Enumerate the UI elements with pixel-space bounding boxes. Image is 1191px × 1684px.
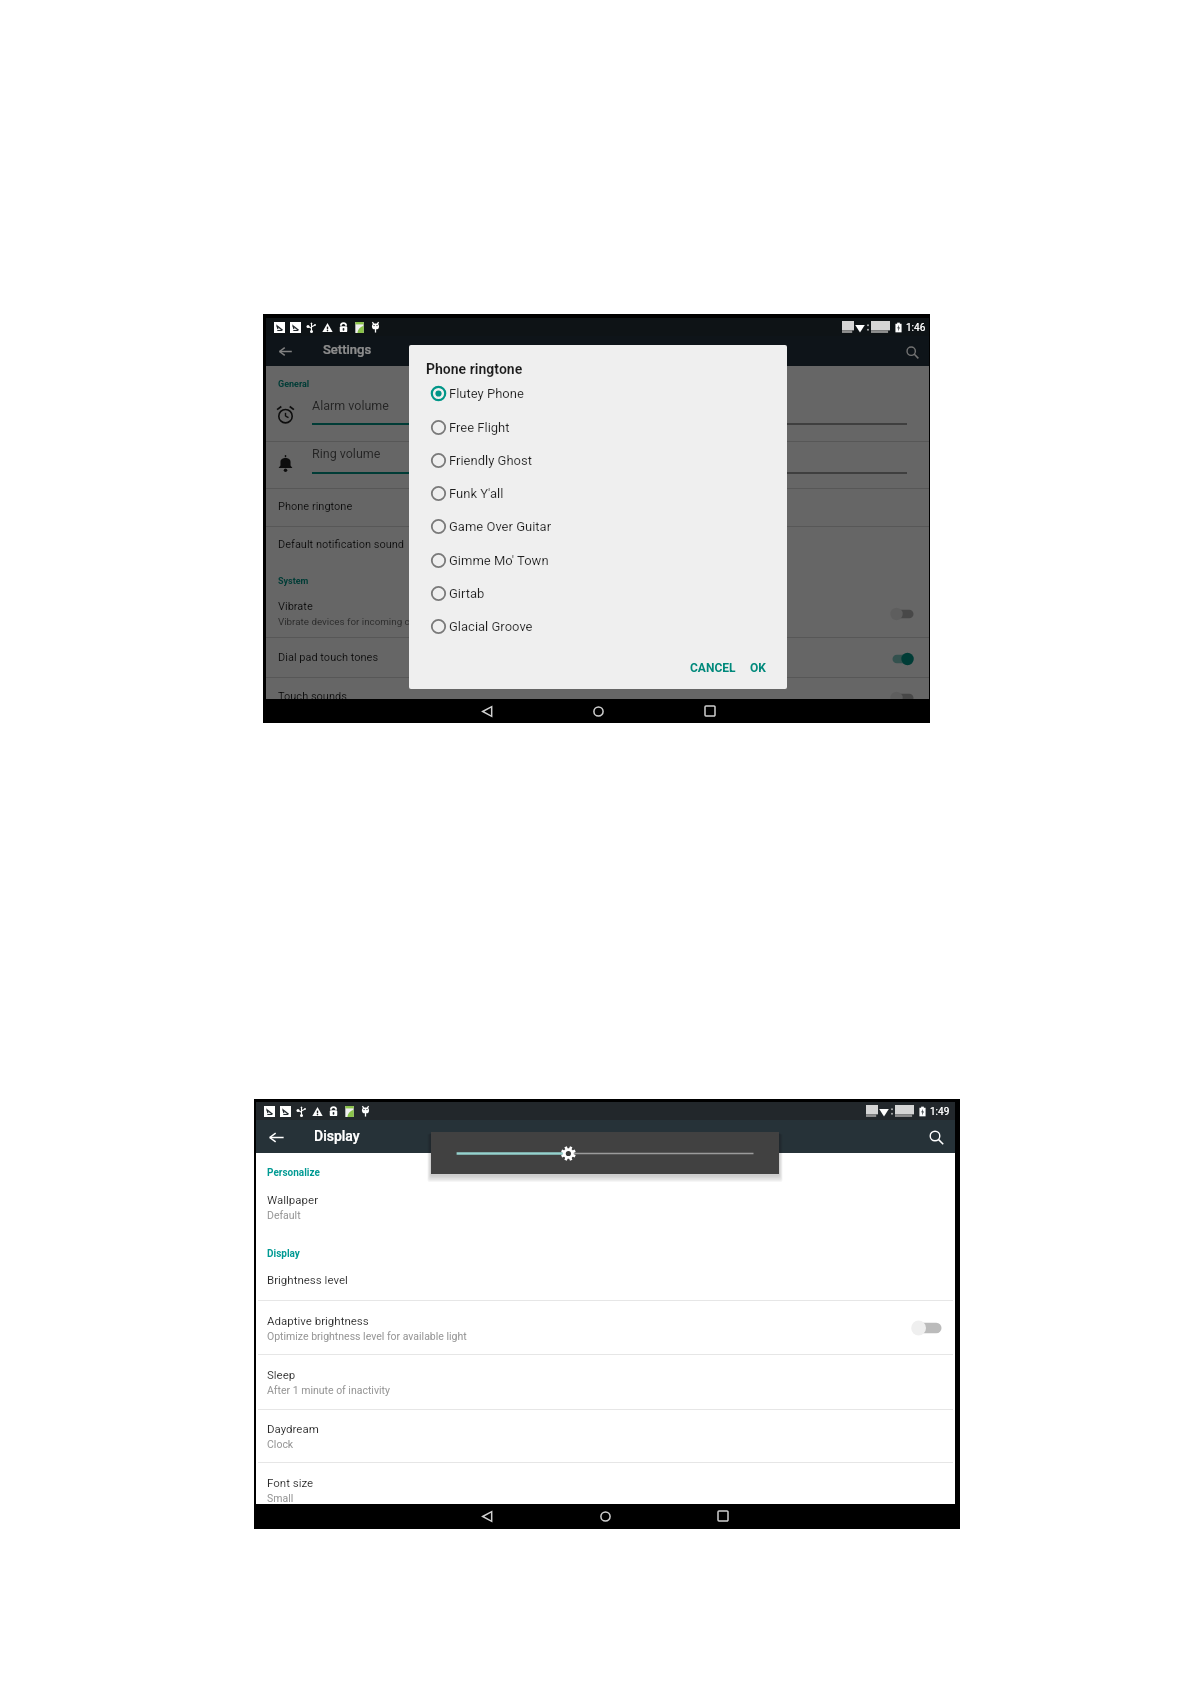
button[interactable]: Search: [898, 338, 926, 366]
button[interactable]: Back: [271, 337, 299, 365]
staticText: Touch sounds: [278, 690, 347, 703]
button[interactable]: Vibrate: [266, 596, 929, 637]
staticText: General: [278, 379, 310, 390]
staticText: Clock: [267, 1438, 294, 1450]
button[interactable]: Back: [476, 1504, 498, 1528]
button[interactable]: Dial pad touch tones: [266, 638, 929, 677]
staticText: Dial pad touch tones: [278, 651, 379, 664]
button[interactable]: CANCEL: [684, 656, 742, 680]
button[interactable]: Funk Y'all: [409, 477, 787, 510]
button[interactable]: Game Over Guitar: [409, 510, 787, 543]
staticText: Free Flight: [449, 420, 510, 435]
button[interactable]: Sleep: [256, 1355, 955, 1409]
staticText: Vibrate: [278, 600, 313, 613]
button[interactable]: Touch sounds: [266, 678, 929, 699]
staticText: Display: [314, 1128, 360, 1144]
staticText: Font size: [267, 1476, 314, 1489]
button[interactable]: Search: [922, 1123, 950, 1151]
button[interactable]: Back: [476, 699, 498, 723]
button[interactable]: Recents: [712, 1504, 734, 1528]
button[interactable]: Daydream: [256, 1410, 955, 1462]
button[interactable]: Toggle: [890, 651, 916, 667]
staticText: Sleep: [267, 1368, 296, 1381]
button[interactable]: Gimme Mo' Town: [409, 544, 787, 577]
staticText: Wallpaper: [267, 1193, 319, 1206]
button[interactable]: Girtab: [409, 577, 787, 610]
staticText: Default: [267, 1209, 301, 1221]
button[interactable]: Recents: [699, 699, 721, 723]
button[interactable]: OK: [744, 656, 772, 680]
staticText: Personalize: [267, 1167, 320, 1179]
staticText: Small: [267, 1492, 294, 1504]
staticText: Funk Y'all: [449, 486, 504, 501]
staticText: Game Over Guitar: [449, 519, 552, 534]
staticText: Optimize brightness level for available …: [267, 1330, 467, 1342]
staticText: Daydream: [267, 1422, 319, 1435]
staticText: 1:49: [930, 1106, 950, 1118]
staticText: Display: [267, 1248, 300, 1260]
button[interactable]: Phone ringtone: [266, 489, 929, 526]
staticText: Adaptive brightness: [267, 1314, 369, 1327]
staticText: CANCEL: [690, 661, 736, 675]
staticText: Alarm volume: [312, 398, 389, 413]
button[interactable]: Flutey Phone: [409, 377, 787, 410]
staticText: Flutey Phone: [449, 386, 524, 401]
button[interactable]: Glacial Groove: [409, 610, 787, 643]
button[interactable]: Default notification sound: [266, 527, 929, 564]
button[interactable]: Alarm volume: [266, 366, 929, 441]
button[interactable]: Friendly Ghost: [409, 444, 787, 477]
staticText: Friendly Ghost: [449, 453, 532, 468]
button[interactable]: Brightness level: [256, 1271, 955, 1300]
staticText: Ring volume: [312, 446, 381, 461]
button[interactable]: Free Flight: [409, 411, 787, 444]
staticText: OK: [750, 661, 766, 675]
staticText: System: [278, 576, 309, 587]
button[interactable]: Ring volume: [266, 442, 929, 488]
staticText: 1:46: [906, 322, 926, 334]
staticText: Phone ringtone: [426, 361, 523, 377]
staticText: Girtab: [449, 586, 485, 601]
staticText: Gimme Mo' Town: [449, 553, 549, 568]
button[interactable]: Toggle: [890, 606, 916, 622]
staticText: Default notification sound: [278, 538, 405, 551]
button[interactable]: Wallpaper: [256, 1186, 955, 1228]
button[interactable]: Toggle adaptive brightness: [911, 1319, 942, 1337]
button[interactable]: Home: [594, 1504, 616, 1528]
staticText: Phone ringtone: [278, 500, 353, 513]
staticText: Brightness level: [267, 1273, 348, 1286]
button[interactable]: Toggle: [890, 690, 916, 706]
button[interactable]: Adaptive brightness: [256, 1301, 955, 1354]
button[interactable]: Font size: [256, 1463, 955, 1504]
staticText: Glacial Groove: [449, 619, 533, 634]
button[interactable]: Back: [262, 1123, 290, 1151]
staticText: After 1 minute of inactivity: [267, 1384, 390, 1396]
button[interactable]: Home: [587, 699, 609, 723]
staticText: Settings: [323, 342, 372, 357]
staticText: Vibrate devices for incoming calls: [278, 616, 425, 627]
